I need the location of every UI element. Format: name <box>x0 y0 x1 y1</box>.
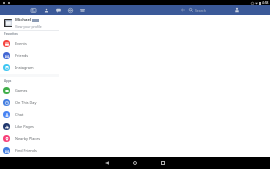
staticText: 4:58 <box>262 1 269 5</box>
staticText: Find Friends <box>15 148 37 153</box>
staticText: Like Pages <box>15 124 34 129</box>
staticText: Chat <box>15 112 24 117</box>
staticText: Nearby Places <box>15 136 41 141</box>
staticText: Apps <box>4 79 12 83</box>
button[interactable]: Like Pages <box>0 120 59 132</box>
staticText: Friends <box>15 53 29 58</box>
button[interactable]: Events <box>0 37 59 49</box>
button[interactable]: Friends <box>41 5 51 15</box>
button[interactable]: Games <box>0 84 59 96</box>
button[interactable]: Recents <box>156 157 170 169</box>
button[interactable]: On This Day <box>0 96 59 108</box>
staticText: Events <box>15 41 27 46</box>
button[interactable]: Back <box>100 157 114 169</box>
button[interactable]: News Feed <box>28 5 38 15</box>
button[interactable]: Chat <box>0 108 59 120</box>
staticText: Instagram <box>15 65 34 70</box>
staticText: Games <box>15 88 28 93</box>
button[interactable]: Home <box>128 157 142 169</box>
staticText: On This Day <box>15 100 37 105</box>
button[interactable]: Nearby Places <box>0 132 59 144</box>
staticText: Michael <box>15 17 32 23</box>
button[interactable]: Find Friends <box>0 144 59 156</box>
button[interactable]: Search <box>189 5 206 15</box>
button[interactable]: Messages <box>53 5 63 15</box>
button[interactable]: Michael <box>0 15 59 30</box>
button[interactable]: Instagram <box>0 61 59 73</box>
button[interactable]: Menu <box>77 5 87 15</box>
button[interactable]: Back <box>180 7 186 13</box>
button[interactable]: Notifications <box>65 5 75 15</box>
staticText: Search <box>195 8 206 13</box>
button[interactable]: Profile <box>234 7 240 13</box>
staticText: View your profile <box>15 24 42 29</box>
button[interactable]: Friends <box>0 49 59 61</box>
staticText: Favorites <box>4 32 18 36</box>
